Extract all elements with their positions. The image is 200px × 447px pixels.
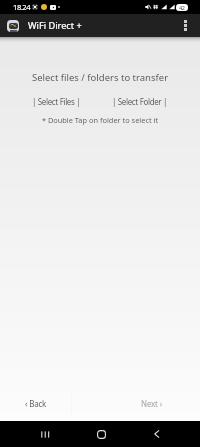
staticText: 42 [179,4,185,11]
staticText: Next › [141,398,162,409]
staticText: 18.24 [13,2,31,12]
button[interactable]: Home [85,421,118,447]
button[interactable]: ‹ Back [0,387,71,421]
button[interactable]: | Select Folder | [112,96,168,107]
button[interactable]: Next › [72,387,200,421]
staticText: Select files / folders to transfer [0,71,200,84]
staticText: WiFi Direct + [28,19,82,32]
button[interactable]: | Select Files | [32,96,81,107]
button[interactable]: Back [140,421,173,447]
staticText: * Double Tap on folder to select it [0,115,200,125]
staticText: ‹ Back [25,398,47,409]
button[interactable]: Recent apps [28,421,61,447]
button[interactable]: More options [174,14,196,37]
